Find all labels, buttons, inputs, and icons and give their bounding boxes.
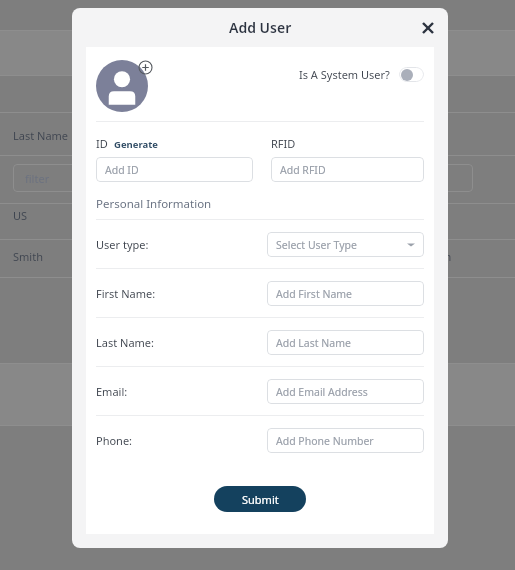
button[interactable]: Close <box>416 16 440 40</box>
staticText: Add ID <box>105 163 139 177</box>
staticText: Add RFID <box>280 163 326 177</box>
staticText: Add User <box>229 18 292 37</box>
staticText: ID <box>96 136 108 151</box>
staticText: Email: <box>96 384 128 399</box>
button[interactable]: Add photo <box>138 60 153 75</box>
staticText: Phone: <box>96 433 133 448</box>
button[interactable]: Add ID <box>96 157 253 182</box>
staticText: Submit <box>242 492 279 507</box>
button[interactable]: Select User Type <box>267 232 424 257</box>
staticText: Smith <box>13 249 43 264</box>
staticText: Personal Information <box>96 196 212 212</box>
button[interactable]: Add RFID <box>271 157 424 182</box>
staticText: Add Phone Number <box>276 434 374 448</box>
staticText: Add Email Address <box>276 385 368 399</box>
staticText: Select User Type <box>276 238 357 252</box>
button[interactable]: Add Last Name <box>267 330 424 355</box>
button[interactable]: Submit <box>214 486 306 512</box>
staticText: Last Name: <box>96 335 155 350</box>
staticText: filter <box>25 171 50 186</box>
button[interactable]: Add Email Address <box>267 379 424 404</box>
staticText: RFID <box>271 136 296 151</box>
staticText: Is A System User? <box>299 67 390 82</box>
staticText: US <box>13 208 28 223</box>
staticText: User type: <box>96 237 149 252</box>
staticText: Add First Name <box>276 287 353 301</box>
staticText: First Name: <box>96 286 156 301</box>
button[interactable]: Is A System User? <box>299 67 424 82</box>
button[interactable]: Profile photo <box>96 60 148 112</box>
button[interactable]: Generate <box>114 138 158 151</box>
button[interactable]: Add First Name <box>267 281 424 306</box>
staticText: Last Name <box>13 128 69 143</box>
button[interactable]: Add Phone Number <box>267 428 424 453</box>
staticText: m <box>441 249 452 264</box>
staticText: Generate <box>114 138 158 151</box>
staticText: Add Last Name <box>276 336 351 350</box>
